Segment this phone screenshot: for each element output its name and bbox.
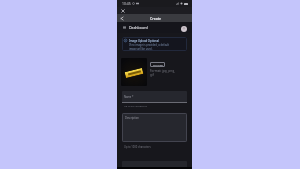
staticText: Up to 1000 characters [124, 145, 151, 149]
staticText: Create [150, 16, 161, 21]
staticText: Description [125, 116, 139, 120]
staticText: CHANGE [153, 63, 163, 66]
button[interactable]: Profile [181, 26, 187, 32]
button[interactable]: CHANGE [150, 62, 165, 67]
button[interactable]: Image preview [121, 58, 147, 86]
staticText: Format: jpg, png, gif [150, 69, 175, 77]
staticText: Up to 50 characters [124, 104, 147, 107]
button[interactable]: Description [122, 113, 187, 142]
button[interactable]: Close [120, 8, 126, 14]
staticText: If no image is provided, a default image… [129, 43, 170, 51]
button[interactable]: Back [118, 15, 125, 22]
button[interactable]: Image Upload Optional [122, 37, 187, 51]
staticText: Image Upload Optional [129, 39, 159, 43]
button[interactable]: Dashboard [117, 22, 192, 33]
staticText: 10:45 [122, 1, 131, 6]
button[interactable]: Name * [122, 91, 187, 103]
staticText: Dashboard [129, 25, 148, 30]
staticText: Name * [124, 95, 134, 99]
